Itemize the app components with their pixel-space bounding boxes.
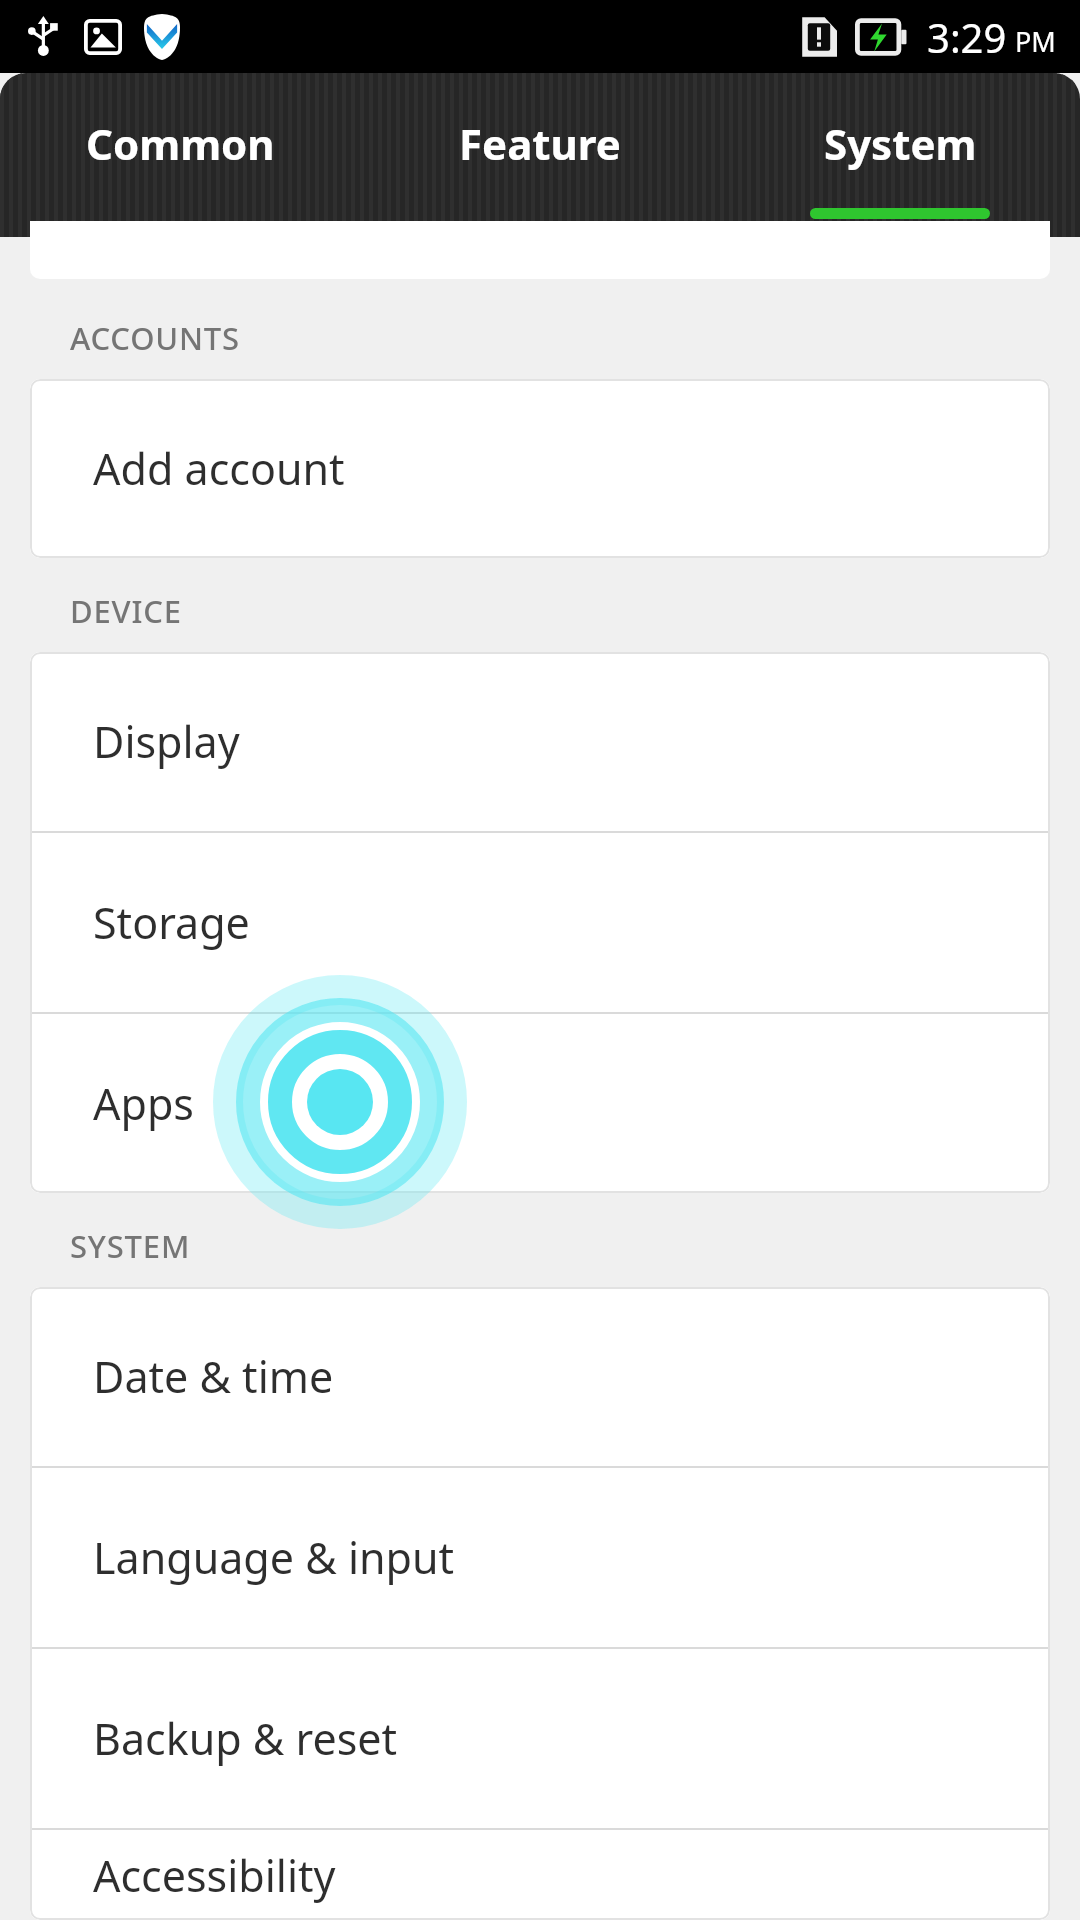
staticText: Display bbox=[93, 712, 240, 771]
staticText: Feature bbox=[459, 115, 621, 172]
staticText: ACCOUNTS bbox=[70, 317, 240, 359]
button[interactable]: Date & time bbox=[30, 1287, 1050, 1466]
staticText: Language & input bbox=[93, 1528, 455, 1587]
staticText: DEVICE bbox=[70, 590, 182, 632]
staticText: Add account bbox=[93, 439, 345, 498]
staticText: 3:29 bbox=[927, 10, 1007, 64]
staticText: Apps bbox=[93, 1074, 194, 1133]
button[interactable]: Common bbox=[0, 73, 360, 237]
staticText: Accessibility bbox=[93, 1846, 336, 1905]
staticText: PM bbox=[1015, 23, 1056, 60]
button[interactable]: Apps bbox=[30, 1014, 1050, 1193]
staticText: SYSTEM bbox=[70, 1225, 191, 1267]
staticText: System bbox=[824, 115, 977, 172]
staticText: Storage bbox=[93, 893, 250, 952]
button[interactable]: System bbox=[720, 73, 1080, 237]
staticText: Common bbox=[86, 115, 275, 172]
staticText: Backup & reset bbox=[93, 1709, 398, 1768]
button[interactable]: Backup & reset bbox=[30, 1649, 1050, 1828]
button[interactable]: Display bbox=[30, 652, 1050, 831]
button[interactable]: Language & input bbox=[30, 1468, 1050, 1647]
button[interactable]: Add account bbox=[30, 379, 1050, 558]
button[interactable]: Accessibility bbox=[30, 1830, 1050, 1920]
button[interactable]: Feature bbox=[360, 73, 720, 237]
staticText: Date & time bbox=[93, 1347, 334, 1406]
other: Touch location indicator bbox=[0, 237, 1080, 1920]
button[interactable]: Storage bbox=[30, 833, 1050, 1012]
